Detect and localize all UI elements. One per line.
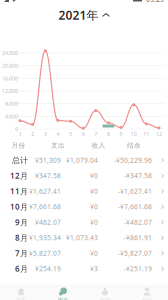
staticText: ¥51,309 xyxy=(35,156,61,165)
staticText: ¥482.07 xyxy=(35,218,61,227)
staticText: 收入 xyxy=(91,141,105,150)
staticText: 月份 xyxy=(11,141,25,150)
staticText: 9月 xyxy=(15,217,28,227)
button[interactable]: 12月 xyxy=(0,168,168,183)
staticText: -¥5,827.07 xyxy=(118,249,152,258)
staticText: ¥1,627.41 xyxy=(29,187,61,196)
staticText: 首页 xyxy=(16,297,26,300)
button[interactable]: 11月 xyxy=(0,183,168,199)
staticText: 资产 xyxy=(100,297,110,300)
staticText: 0 xyxy=(15,125,18,133)
staticText: ¥347.58 xyxy=(35,171,61,180)
staticText: -¥7,661.68 xyxy=(118,202,152,211)
staticText: -¥861.91 xyxy=(124,233,152,242)
staticText: 6 xyxy=(82,130,85,138)
staticText: -¥1,627.41 xyxy=(118,187,152,196)
staticText: ¥254.19 xyxy=(35,264,61,273)
button[interactable]: 7月 xyxy=(0,245,168,261)
staticText: 8 xyxy=(107,130,110,138)
button[interactable]: 总计 xyxy=(0,152,168,168)
staticText: ¥5,827.07 xyxy=(29,249,61,258)
staticText: 16,000 xyxy=(2,75,18,82)
staticText: 8,000 xyxy=(5,100,18,107)
staticText: 结余 xyxy=(127,141,141,150)
staticText: 8月 xyxy=(15,232,28,243)
staticText: 11 xyxy=(143,130,149,138)
staticText: 09:29 xyxy=(146,0,164,4)
staticText: 10月 xyxy=(10,201,28,212)
staticText: 2021年 xyxy=(58,7,98,23)
staticText: 5 xyxy=(69,130,72,138)
staticText: -¥50,229.96 xyxy=(114,156,152,165)
button[interactable]: 9月 xyxy=(0,214,168,230)
staticText: 20,000 xyxy=(2,62,18,69)
staticText: ¥1,079.04 xyxy=(66,156,98,165)
staticText: ¥0 xyxy=(90,249,98,258)
staticText: -¥482.07 xyxy=(124,218,152,227)
staticText: ¥0 xyxy=(90,171,98,180)
staticText: ¥1,073.43 xyxy=(66,233,98,242)
staticText: 图表 xyxy=(58,297,68,300)
staticText: ¥3 xyxy=(90,264,98,273)
staticText: 6月 xyxy=(15,263,28,274)
staticText: 1 xyxy=(18,130,21,138)
staticText: 2 xyxy=(31,130,34,138)
staticText: 4,000 xyxy=(5,113,18,120)
staticText: ¥0 xyxy=(90,202,98,211)
staticText: 我的 xyxy=(142,297,152,300)
staticText: 7 xyxy=(94,130,97,138)
staticText: 7月 xyxy=(15,248,28,258)
staticText: ¥0 xyxy=(90,218,98,227)
staticText: 总计 xyxy=(12,155,28,165)
staticText: 11月 xyxy=(10,186,28,196)
button[interactable]: 6月 xyxy=(0,261,168,276)
staticText: 12月 xyxy=(10,170,28,181)
staticText: ¥0 xyxy=(90,187,98,196)
staticText: ¥1,935.34 xyxy=(29,233,61,242)
staticText: 24,000 xyxy=(2,49,18,57)
button[interactable]: 10月 xyxy=(0,199,168,214)
button[interactable]: 8月 xyxy=(0,230,168,245)
staticText: 9 xyxy=(120,130,123,138)
button[interactable]: 首页 xyxy=(0,284,42,300)
staticText: 4 xyxy=(56,130,59,138)
staticText: 支出 xyxy=(51,141,65,150)
staticText: -¥251.19 xyxy=(124,264,152,273)
staticText: 12 xyxy=(156,130,162,138)
staticText: 12,000 xyxy=(2,87,18,95)
button[interactable]: 图表 xyxy=(42,284,84,300)
staticText: ¥7,661.68 xyxy=(29,202,61,211)
staticText: 10 xyxy=(131,130,137,138)
button[interactable]: 我的 xyxy=(126,284,168,300)
button[interactable]: 资产 xyxy=(84,284,126,300)
staticText: -¥347.58 xyxy=(124,171,152,180)
staticText: 3 xyxy=(44,130,47,138)
